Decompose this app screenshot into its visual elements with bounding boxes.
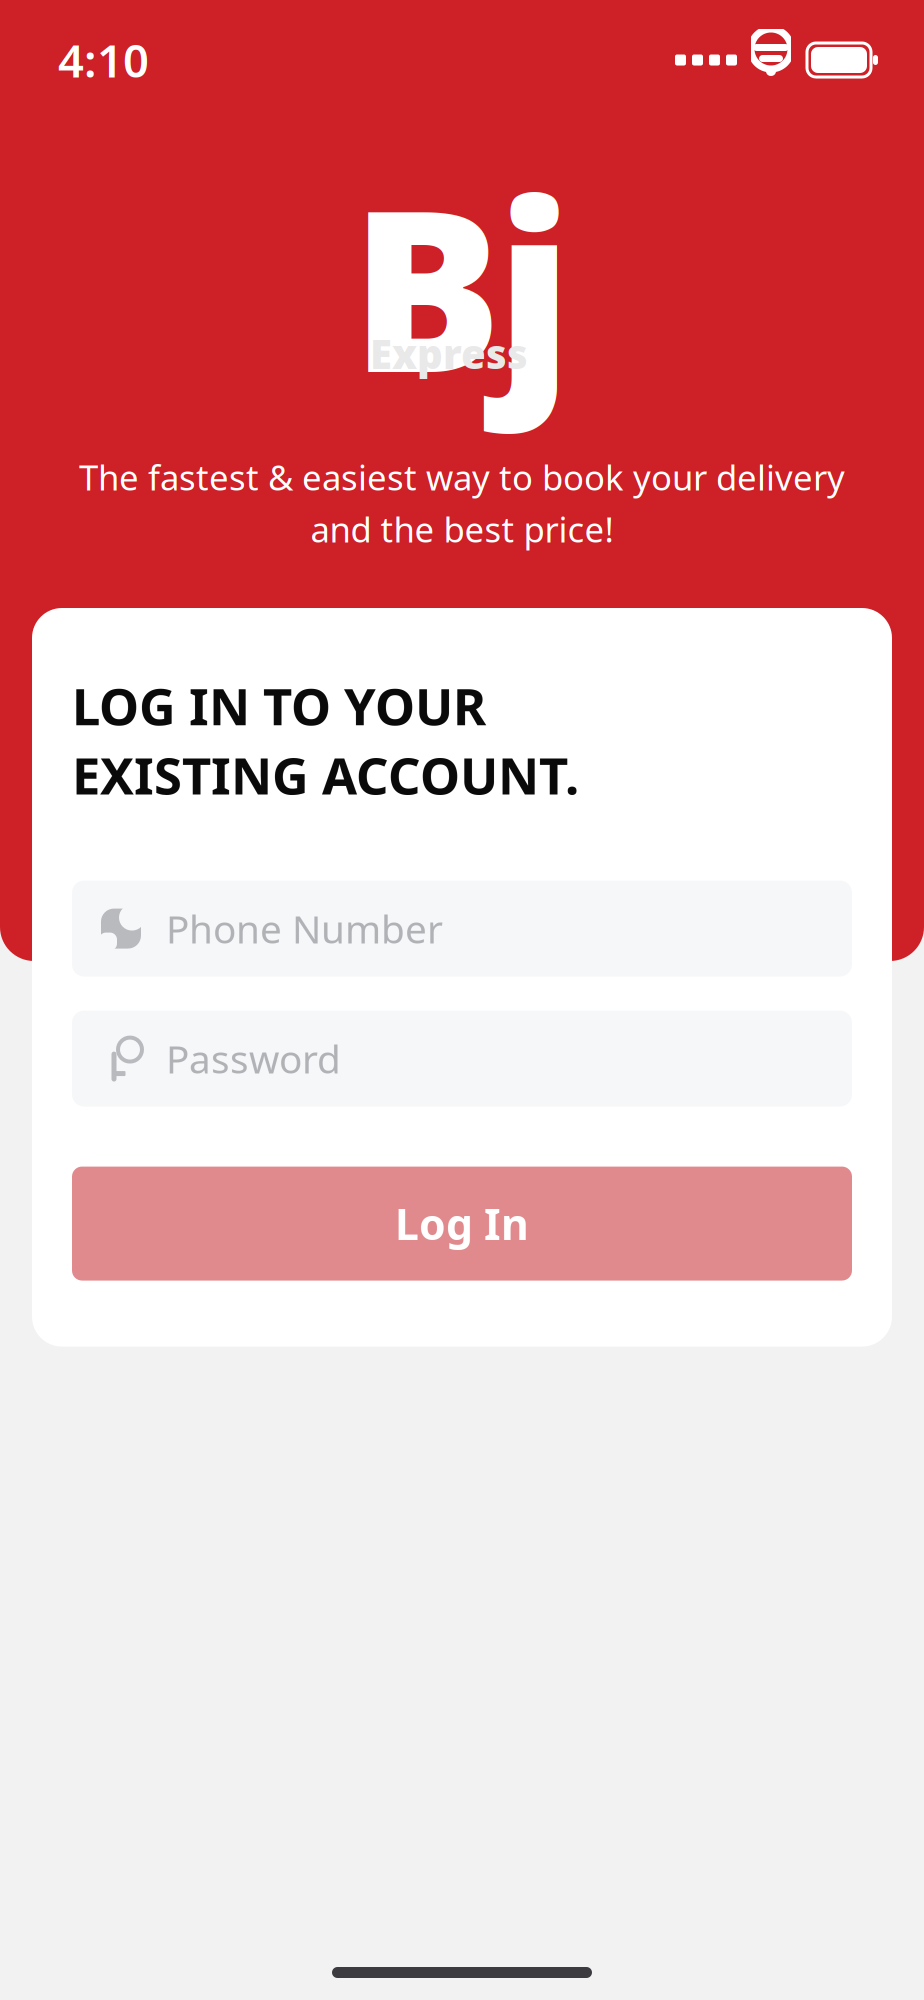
button[interactable]: Password [72, 1011, 852, 1107]
staticText: The fastest & easiest way to book your d… [79, 454, 845, 500]
staticText: Password [166, 1033, 341, 1084]
staticText: Phone Number [166, 903, 443, 954]
staticText: Express [370, 327, 528, 380]
staticText: and the best price! [310, 506, 613, 552]
staticText: j [496, 127, 573, 443]
staticText: 4:10 [58, 30, 149, 90]
button[interactable]: Phone Number [72, 881, 852, 977]
staticText: LOG IN TO YOUR [72, 672, 486, 739]
staticText: Log In [395, 1195, 529, 1252]
staticText: EXISTING ACCOUNT. [72, 741, 579, 809]
button[interactable]: Log In [72, 1167, 852, 1281]
staticText: B [351, 136, 502, 434]
